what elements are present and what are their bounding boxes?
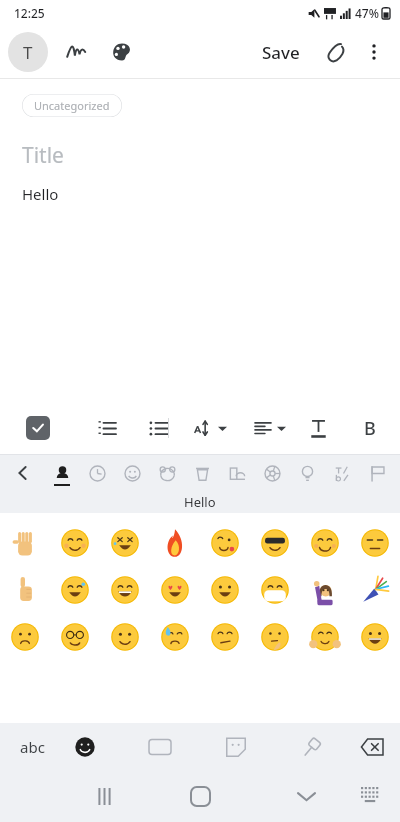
button[interactable]: Emoji [53,568,97,612]
button[interactable]: Bulleted list [140,410,176,446]
button[interactable]: Home [176,772,224,820]
button[interactable]: Food [186,457,218,489]
button[interactable]: Emoji [353,568,397,612]
staticText: Save [262,41,300,64]
button[interactable]: Palette [102,32,142,72]
button[interactable]: More options [356,34,392,70]
button[interactable]: Emoji [103,521,147,565]
button[interactable]: Uncategorized [22,94,122,117]
button[interactable]: Numbered list [88,410,124,446]
button[interactable]: GIF [140,727,180,767]
button[interactable]: Emoji [303,615,347,659]
button[interactable]: Emoji [203,568,247,612]
button[interactable]: Emoji [253,615,297,659]
button[interactable]: Emoji [153,615,197,659]
button[interactable]: Stickers [216,727,256,767]
button[interactable]: Draw [56,32,96,72]
button[interactable]: Backspace [352,727,392,767]
button[interactable]: Emoji [3,521,47,565]
button[interactable]: Attach [316,32,356,72]
button[interactable]: Pin [292,727,332,767]
button[interactable]: Back [10,460,36,486]
button[interactable]: Hide keyboard [282,772,330,820]
button[interactable]: Checklist [20,410,56,446]
button[interactable]: Emoji [53,521,97,565]
staticText: B [364,416,376,441]
button[interactable]: Symbols [326,457,358,489]
staticText: Hello [22,184,59,204]
staticText: 47% [355,5,379,21]
button[interactable]: Objects [291,457,323,489]
button[interactable]: Clock [81,457,113,489]
button[interactable]: Emoji [203,521,247,565]
button[interactable]: Save [256,35,306,70]
staticText: T [23,41,33,64]
button[interactable]: Flags [361,457,393,489]
button[interactable]: Emoji [353,521,397,565]
button[interactable]: Smileys [116,457,148,489]
button[interactable]: Recent [46,457,78,489]
button[interactable]: Recents [80,772,128,820]
button[interactable]: Emoji [3,568,47,612]
button[interactable]: abc [8,727,56,767]
button[interactable]: Emoji [153,521,197,565]
staticText: 12:25 [14,5,45,21]
button[interactable]: Text mode [8,32,48,72]
button[interactable]: Activities [256,457,288,489]
button[interactable]: Animals [151,457,183,489]
button[interactable]: Emoji [3,615,47,659]
button[interactable]: Text size [182,406,238,450]
button[interactable]: Emoji [103,615,147,659]
button[interactable]: Underline [300,410,336,446]
button[interactable]: Travel [221,457,253,489]
button[interactable]: Emoji [203,615,247,659]
button[interactable]: Emoji [53,615,97,659]
button[interactable]: Alignment [242,406,298,450]
staticText: Uncategorized [34,98,110,113]
staticText: Hello [184,493,216,511]
staticText: abc [20,737,45,757]
button[interactable]: Emoji [303,521,347,565]
button[interactable]: Emoji [65,727,105,767]
button[interactable]: Emoji [303,568,347,612]
button[interactable]: Change keyboard [348,774,392,818]
button[interactable]: Emoji [253,568,297,612]
staticText: Title [22,141,64,170]
button[interactable]: Emoji [353,615,397,659]
button[interactable]: Emoji [253,521,297,565]
button[interactable]: Emoji [103,568,147,612]
button[interactable]: Emoji [153,568,197,612]
button[interactable]: B [352,410,388,446]
